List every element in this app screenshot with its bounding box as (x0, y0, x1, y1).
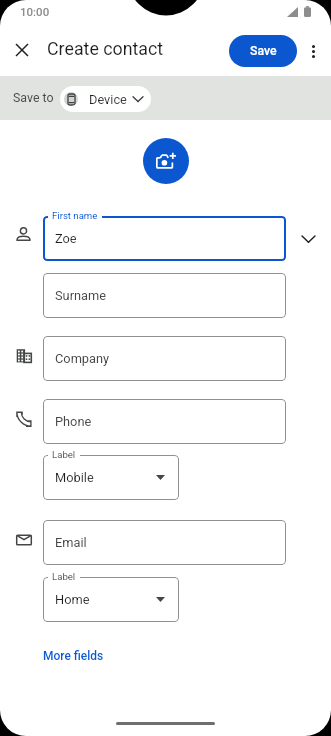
staticText: Save to (13, 90, 54, 105)
staticText: Home (55, 592, 90, 607)
staticText: Zoe (55, 231, 77, 246)
staticText: Email (55, 535, 87, 550)
button[interactable]: Add photo (143, 138, 189, 184)
button[interactable]: Expand name fields (295, 226, 321, 252)
button[interactable]: More options (297, 35, 329, 67)
button[interactable]: Surname (43, 273, 286, 318)
staticText: Company (55, 351, 110, 366)
button[interactable]: Device (60, 86, 151, 112)
staticText: Mobile (55, 470, 94, 485)
button[interactable]: Phone (43, 399, 286, 444)
staticText: Surname (55, 288, 107, 303)
button[interactable]: Close (4, 32, 40, 68)
staticText: More fields (43, 649, 104, 663)
button[interactable]: Company (43, 336, 286, 381)
staticText: Label (52, 571, 76, 582)
staticText: Label (52, 449, 76, 460)
staticText: Save (250, 44, 277, 58)
button[interactable]: Home (43, 577, 179, 622)
staticText: 10:00 (20, 5, 50, 18)
staticText: Create contact (47, 38, 164, 59)
button[interactable]: Mobile (43, 455, 179, 500)
staticText: Phone (55, 414, 92, 429)
button[interactable]: Zoe (43, 216, 286, 261)
button[interactable]: More fields (43, 649, 104, 663)
staticText: First name (52, 210, 98, 221)
button[interactable]: Save (229, 35, 297, 67)
button[interactable]: Email (43, 520, 286, 565)
staticText: Device (89, 92, 127, 107)
